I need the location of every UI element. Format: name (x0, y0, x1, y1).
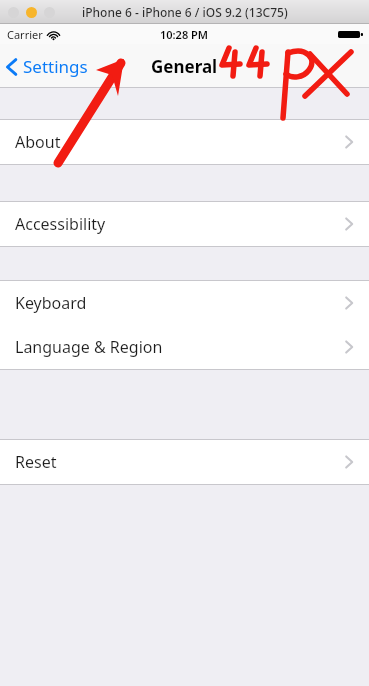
button[interactable]: About (0, 120, 369, 164)
staticText: Accessibility (15, 213, 106, 235)
staticText: Keyboard (15, 292, 87, 314)
staticText: About (15, 131, 61, 153)
button[interactable]: Reset (0, 440, 369, 484)
staticText: Language & Region (15, 336, 163, 358)
staticText: Carrier (7, 27, 43, 42)
staticText: Reset (15, 451, 57, 473)
button[interactable]: Keyboard (0, 281, 369, 325)
staticText: 10:28 PM (160, 27, 209, 42)
staticText: iPhone 6 - iPhone 6 / iOS 9.2 (13C75) (82, 4, 288, 20)
button[interactable]: Settings (0, 49, 98, 84)
button[interactable]: Accessibility (0, 202, 369, 246)
button[interactable]: Language & Region (0, 325, 369, 369)
staticText: General (151, 55, 218, 78)
staticText: Settings (23, 55, 88, 78)
